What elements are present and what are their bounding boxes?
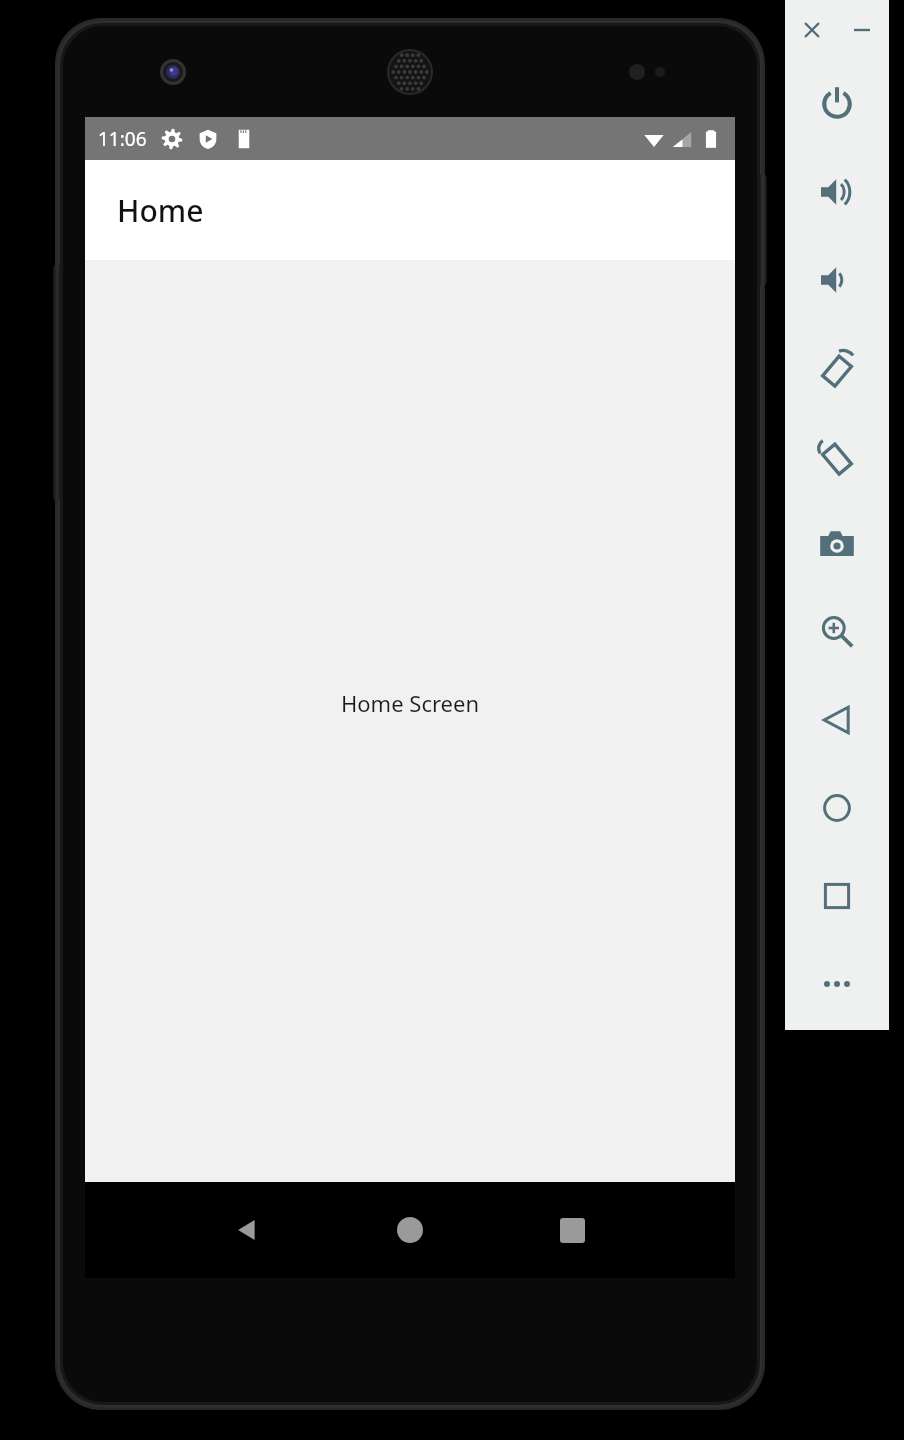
button[interactable]: Overview bbox=[785, 852, 889, 940]
button[interactable]: Power bbox=[785, 60, 889, 148]
staticText: Home Screen bbox=[341, 688, 480, 718]
button[interactable]: Rotate right bbox=[785, 412, 889, 500]
button[interactable]: More bbox=[785, 940, 889, 1028]
button[interactable]: Recent apps bbox=[544, 1202, 600, 1258]
staticText: 11:06 bbox=[98, 126, 147, 152]
button[interactable]: Volume down bbox=[785, 236, 889, 324]
button[interactable]: Home bbox=[382, 1202, 438, 1258]
button[interactable]: Take screenshot bbox=[785, 500, 889, 588]
button[interactable]: Zoom bbox=[785, 588, 889, 676]
button[interactable]: Volume up bbox=[785, 148, 889, 236]
staticText: Home bbox=[117, 190, 204, 231]
button[interactable]: Close bbox=[797, 15, 827, 45]
button[interactable]: Minimize bbox=[847, 15, 877, 45]
button[interactable]: Back bbox=[785, 676, 889, 764]
button[interactable]: Home bbox=[785, 764, 889, 852]
button[interactable]: Back bbox=[220, 1202, 276, 1258]
button[interactable]: Rotate left bbox=[785, 324, 889, 412]
